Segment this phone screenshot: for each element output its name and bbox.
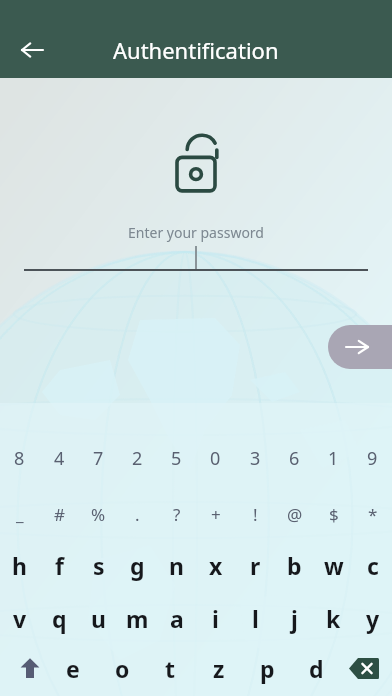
- staticText: $: [329, 503, 339, 526]
- staticText: 2: [132, 446, 143, 471]
- button[interactable]: Backspace: [342, 646, 386, 690]
- staticText: u: [91, 603, 106, 634]
- staticText: Enter your password: [128, 223, 264, 242]
- button[interactable]: Shift: [10, 646, 50, 690]
- button[interactable]: .: [118, 492, 157, 536]
- staticText: l: [252, 603, 259, 634]
- button[interactable]: f: [40, 543, 79, 587]
- button[interactable]: a: [157, 596, 196, 640]
- staticText: .: [135, 503, 140, 526]
- button[interactable]: 3: [236, 436, 275, 480]
- staticText: 1: [328, 446, 339, 471]
- staticText: *: [368, 503, 378, 526]
- staticText: o: [115, 653, 130, 684]
- button[interactable]: 0: [196, 436, 235, 480]
- staticText: c: [367, 550, 379, 581]
- button[interactable]: 9: [353, 436, 392, 480]
- button[interactable]: !: [236, 492, 275, 536]
- button[interactable]: 6: [275, 436, 314, 480]
- button[interactable]: 2: [118, 436, 157, 480]
- staticText: 5: [171, 446, 182, 471]
- button[interactable]: %: [79, 492, 118, 536]
- staticText: m: [126, 603, 149, 634]
- button[interactable]: b: [275, 543, 314, 587]
- button[interactable]: t: [148, 646, 192, 690]
- staticText: 0: [210, 446, 221, 471]
- staticText: p: [260, 653, 275, 684]
- button[interactable]: u: [79, 596, 118, 640]
- staticText: +: [211, 503, 221, 526]
- staticText: h: [12, 550, 27, 581]
- staticText: s: [93, 550, 105, 581]
- button[interactable]: v: [0, 596, 39, 640]
- staticText: !: [253, 503, 258, 526]
- button[interactable]: $: [314, 492, 353, 536]
- staticText: k: [326, 603, 341, 634]
- staticText: 7: [93, 446, 104, 471]
- staticText: n: [169, 550, 184, 581]
- staticText: 6: [289, 446, 300, 471]
- button[interactable]: h: [0, 543, 39, 587]
- button[interactable]: y: [353, 596, 392, 640]
- button[interactable]: +: [196, 492, 235, 536]
- button[interactable]: n: [157, 543, 196, 587]
- button[interactable]: o: [100, 646, 144, 690]
- staticText: f: [55, 550, 64, 581]
- button[interactable]: q: [40, 596, 79, 640]
- button[interactable]: Back: [10, 28, 54, 72]
- button[interactable]: k: [314, 596, 353, 640]
- button[interactable]: j: [275, 596, 314, 640]
- staticText: w: [324, 550, 344, 581]
- button[interactable]: 8: [0, 436, 39, 480]
- staticText: ?: [173, 503, 181, 526]
- staticText: q: [52, 603, 67, 634]
- button[interactable]: ?: [157, 492, 196, 536]
- button[interactable]: 1: [314, 436, 353, 480]
- staticText: Authentification: [113, 35, 279, 65]
- button[interactable]: Submit: [328, 325, 392, 369]
- button[interactable]: r: [236, 543, 275, 587]
- staticText: 4: [54, 446, 65, 471]
- staticText: e: [66, 653, 80, 684]
- staticText: y: [366, 603, 380, 634]
- staticText: b: [287, 550, 302, 581]
- staticText: %: [91, 503, 106, 526]
- staticText: a: [170, 603, 184, 634]
- button[interactable]: d: [294, 646, 338, 690]
- button[interactable]: #: [40, 492, 79, 536]
- staticText: #: [54, 503, 65, 526]
- staticText: 8: [14, 446, 25, 471]
- staticText: 3: [250, 446, 261, 471]
- staticText: g: [130, 550, 145, 581]
- staticText: _: [16, 503, 24, 526]
- button[interactable]: e: [51, 646, 95, 690]
- button[interactable]: 7: [79, 436, 118, 480]
- button[interactable]: p: [245, 646, 289, 690]
- button[interactable]: l: [236, 596, 275, 640]
- button[interactable]: 4: [40, 436, 79, 480]
- staticText: z: [213, 653, 225, 684]
- staticText: v: [13, 603, 27, 634]
- button[interactable]: s: [79, 543, 118, 587]
- button[interactable]: m: [118, 596, 157, 640]
- staticText: j: [291, 603, 298, 634]
- button[interactable]: *: [353, 492, 392, 536]
- button[interactable]: z: [197, 646, 241, 690]
- staticText: @: [287, 503, 303, 526]
- button[interactable]: i: [196, 596, 235, 640]
- button[interactable]: w: [314, 543, 353, 587]
- button[interactable]: g: [118, 543, 157, 587]
- staticText: r: [250, 550, 261, 581]
- staticText: x: [209, 550, 223, 581]
- button[interactable]: 5: [157, 436, 196, 480]
- staticText: t: [165, 653, 175, 684]
- button[interactable]: @: [275, 492, 314, 536]
- button[interactable]: x: [196, 543, 235, 587]
- staticText: d: [309, 653, 324, 684]
- button[interactable]: _: [0, 492, 39, 536]
- button[interactable]: c: [353, 543, 392, 587]
- staticText: 9: [367, 446, 378, 471]
- staticText: i: [212, 603, 219, 634]
